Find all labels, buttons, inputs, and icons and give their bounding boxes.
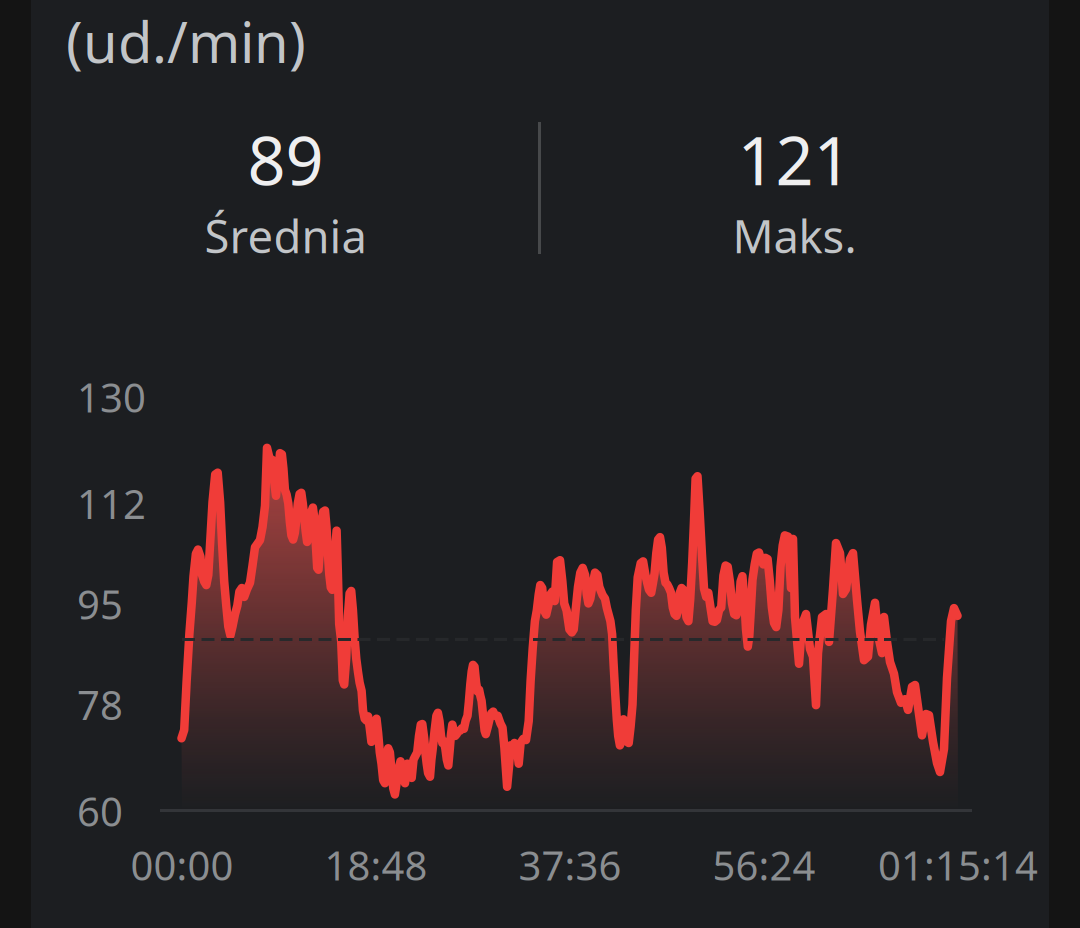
staticText: 121: [737, 115, 851, 203]
staticText: (ud./min): [66, 4, 306, 78]
staticText: 95: [77, 577, 123, 630]
staticText: 112: [77, 477, 146, 530]
staticText: Maks.: [732, 205, 856, 266]
staticText: 130: [77, 370, 146, 423]
staticText: 00:00: [130, 838, 233, 891]
staticText: 78: [77, 678, 123, 731]
staticText: 60: [77, 784, 123, 837]
staticText: 01:15:14: [878, 838, 1038, 891]
staticText: 56:24: [712, 838, 815, 891]
staticText: 37:36: [518, 838, 621, 891]
staticText: 18:48: [324, 838, 427, 891]
staticText: 89: [247, 115, 323, 203]
staticText: Średnia: [204, 205, 366, 266]
